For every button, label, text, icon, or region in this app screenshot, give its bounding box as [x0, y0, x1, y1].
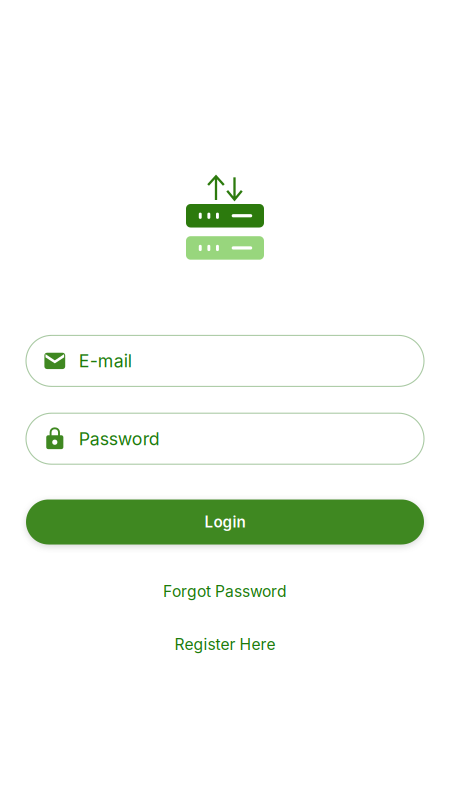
button[interactable]: Login	[26, 499, 424, 544]
button[interactable]: E-mail	[26, 335, 424, 386]
staticText: Login	[204, 513, 245, 531]
button[interactable]: Forgot Password	[163, 582, 287, 601]
staticText: Forgot Password	[163, 582, 287, 601]
staticText: E-mail	[79, 350, 132, 372]
staticText: Register Here	[174, 635, 275, 654]
button[interactable]: Password	[26, 413, 424, 464]
button[interactable]: Register Here	[174, 635, 275, 654]
staticText: Password	[79, 428, 160, 449]
